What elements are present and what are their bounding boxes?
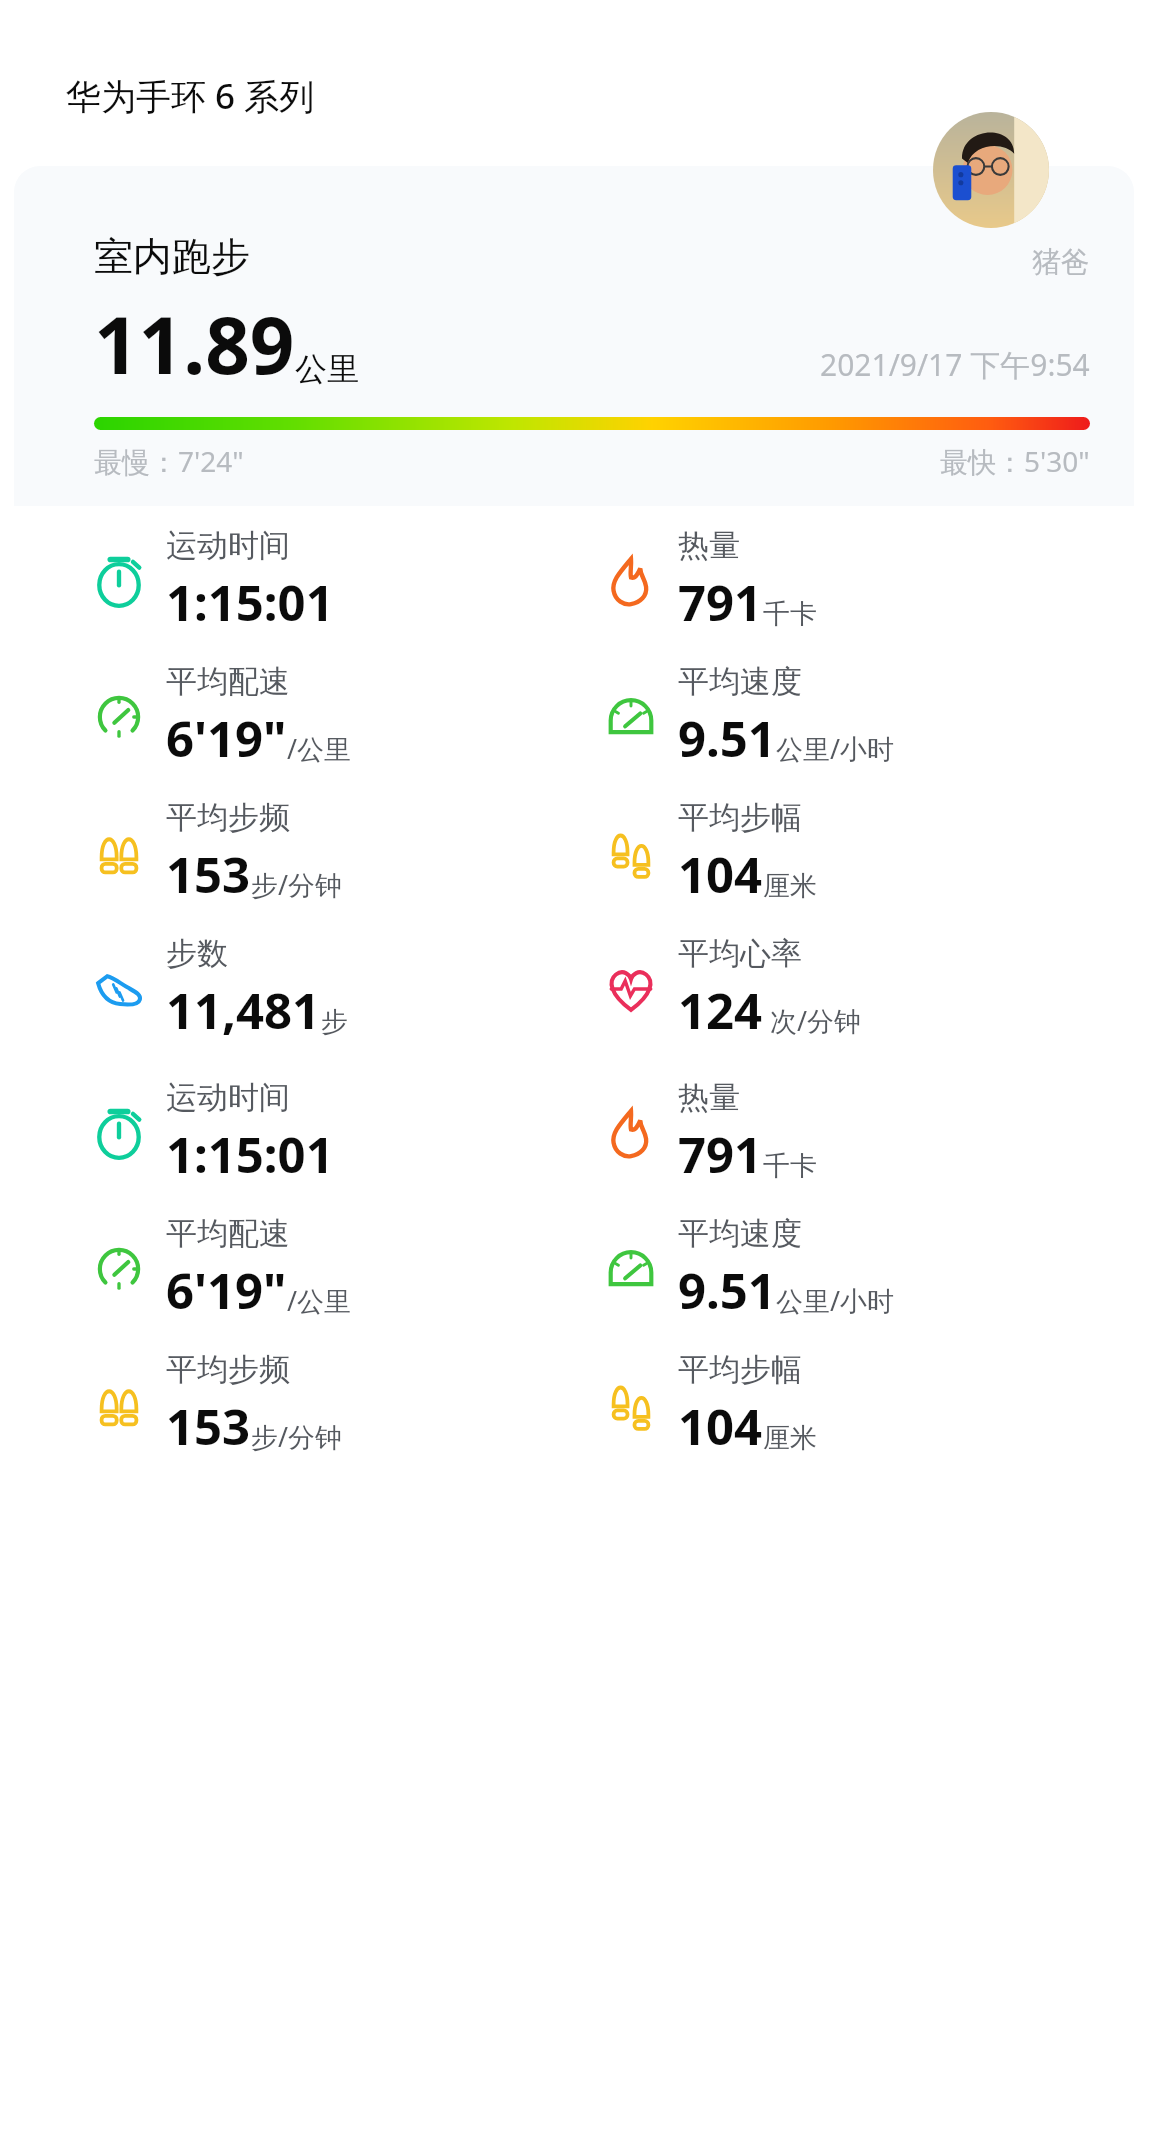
- staticText: 153: [166, 1393, 251, 1460]
- button[interactable]: 平均速度: [602, 662, 1134, 772]
- staticText: 运动时间: [166, 1078, 290, 1117]
- staticText: 室内跑步: [94, 232, 250, 281]
- staticText: 运动时间: [166, 526, 290, 565]
- staticText: 公里: [295, 349, 359, 389]
- staticText: 平均心率: [678, 934, 802, 973]
- staticText: 千卡: [763, 597, 817, 631]
- staticText: 千卡: [763, 1149, 817, 1183]
- staticText: 9.51: [678, 705, 776, 772]
- button[interactable]: 热量: [602, 1078, 1134, 1188]
- staticText: 华为手环 6 系列: [66, 72, 315, 120]
- button[interactable]: 平均速度: [602, 1214, 1134, 1324]
- staticText: 步: [321, 1005, 348, 1039]
- button[interactable]: 平均步频: [90, 798, 574, 908]
- staticText: 厘米: [763, 869, 817, 903]
- staticText: 791: [678, 569, 763, 636]
- staticText: 2021/9/17 下午9:54: [820, 344, 1090, 385]
- staticText: 步/分钟: [251, 1418, 343, 1455]
- button[interactable]: 平均步频: [90, 1350, 574, 1460]
- button[interactable]: 平均配速: [90, 1214, 574, 1324]
- staticText: 平均配速: [166, 662, 290, 701]
- staticText: /公里: [287, 1282, 352, 1319]
- staticText: 平均步频: [166, 798, 290, 837]
- staticText: 公里/小时: [776, 730, 895, 767]
- staticText: 11,481: [166, 977, 321, 1044]
- staticText: 1:15:01: [166, 569, 334, 636]
- staticText: 平均速度: [678, 1214, 802, 1253]
- staticText: 平均速度: [678, 662, 802, 701]
- staticText: 步数: [166, 934, 228, 973]
- staticText: 平均步频: [166, 1350, 290, 1389]
- button[interactable]: 平均步幅: [602, 798, 1134, 908]
- staticText: 最慢：7'24": [94, 442, 244, 480]
- staticText: 厘米: [763, 1421, 817, 1455]
- staticText: 1:15:01: [166, 1121, 334, 1188]
- staticText: 平均步幅: [678, 1350, 802, 1389]
- staticText: 公里/小时: [776, 1282, 895, 1319]
- staticText: 153: [166, 841, 251, 908]
- button[interactable]: 步数: [90, 934, 574, 1044]
- staticText: 6'19": [166, 1257, 287, 1324]
- button[interactable]: 运动时间: [90, 526, 574, 636]
- staticText: 124: [678, 977, 763, 1044]
- staticText: 平均配速: [166, 1214, 290, 1253]
- staticText: 平均步幅: [678, 798, 802, 837]
- button[interactable]: 运动时间: [90, 1078, 574, 1188]
- button[interactable]: User profile: [933, 112, 1049, 228]
- staticText: 9.51: [678, 1257, 776, 1324]
- button[interactable]: 平均心率: [602, 934, 1134, 1044]
- staticText: 热量: [678, 1078, 740, 1117]
- staticText: 热量: [678, 526, 740, 565]
- staticText: 104: [678, 841, 763, 908]
- button[interactable]: 平均步幅: [602, 1350, 1134, 1460]
- staticText: /公里: [287, 730, 352, 767]
- staticText: 6'19": [166, 705, 287, 772]
- button[interactable]: 热量: [602, 526, 1134, 636]
- staticText: 猪爸: [1032, 244, 1090, 281]
- staticText: 104: [678, 1393, 763, 1460]
- staticText: 步/分钟: [251, 866, 343, 903]
- staticText: 最快：5'30": [940, 442, 1090, 480]
- staticText: 791: [678, 1121, 763, 1188]
- staticText: 11.89: [94, 291, 295, 397]
- staticText: 次/分钟: [763, 1002, 862, 1039]
- button[interactable]: 平均配速: [90, 662, 574, 772]
